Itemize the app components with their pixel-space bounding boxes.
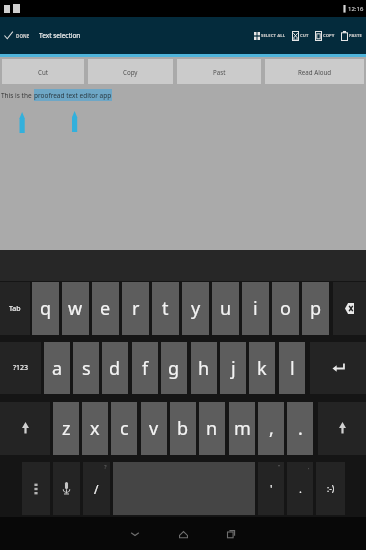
- button[interactable]: j: [220, 342, 246, 394]
- button[interactable]: Hide keyboard: [122, 521, 148, 547]
- button[interactable]: settings: [22, 462, 50, 515]
- staticText: o: [280, 296, 291, 321]
- button[interactable]: h: [191, 342, 217, 394]
- staticText: f: [142, 356, 149, 381]
- staticText: proofread text editor app: [34, 91, 112, 100]
- staticText: Cut: [38, 68, 48, 76]
- button[interactable]: Tab: [0, 282, 30, 335]
- staticText: p: [310, 296, 322, 321]
- button[interactable]: Copy: [88, 59, 173, 84]
- staticText: ,: [269, 416, 274, 441]
- staticText: k: [257, 356, 267, 381]
- button[interactable]: Read Aloud: [265, 59, 364, 84]
- button[interactable]: e: [92, 282, 119, 335]
- staticText: g: [168, 356, 180, 381]
- button[interactable]: k: [249, 342, 275, 394]
- staticText: SELECT ALL: [261, 33, 286, 39]
- button[interactable]: w: [62, 282, 89, 335]
- staticText: :-): [327, 483, 335, 494]
- button[interactable]: ?123: [0, 342, 41, 394]
- button[interactable]: d: [102, 342, 128, 394]
- staticText: 12:16: [348, 5, 364, 13]
- button[interactable]: enter: [310, 342, 366, 394]
- staticText: n: [206, 416, 218, 441]
- button[interactable]: SELECT ALL: [251, 24, 289, 48]
- button[interactable]: a: [44, 342, 70, 394]
- staticText: j: [231, 356, 236, 381]
- button[interactable]: COPY: [312, 23, 338, 49]
- button[interactable]: shift: [0, 402, 50, 455]
- staticText: c: [120, 416, 129, 441]
- button[interactable]: ,: [258, 402, 284, 455]
- button[interactable]: Recent apps: [218, 521, 244, 547]
- staticText: ?123: [13, 363, 29, 373]
- button[interactable]: backspace: [333, 282, 366, 335]
- button[interactable]: o: [272, 282, 299, 335]
- staticText: COPY: [323, 33, 335, 39]
- staticText: w: [68, 296, 83, 321]
- staticText: ,: [308, 463, 310, 471]
- staticText: .: [298, 416, 303, 441]
- button[interactable]: q: [32, 282, 59, 335]
- button[interactable]: p: [302, 282, 329, 335]
- button[interactable]: g: [161, 342, 187, 394]
- staticText: CUT: [300, 33, 309, 39]
- staticText: DONE: [16, 33, 30, 39]
- staticText: This is the: [1, 91, 34, 100]
- button[interactable]: x: [82, 402, 108, 455]
- button[interactable]: r: [122, 282, 149, 335]
- button[interactable]: Home: [170, 521, 196, 547]
- staticText: a: [52, 356, 63, 381]
- staticText: r: [132, 296, 140, 321]
- button[interactable]: Cut: [2, 59, 84, 84]
- staticText: q: [40, 296, 52, 321]
- staticText: Tab: [9, 304, 21, 314]
- button[interactable]: b: [170, 402, 196, 455]
- button[interactable]: :-): [316, 462, 345, 515]
- staticText: .: [299, 481, 302, 496]
- button[interactable]: y: [182, 282, 209, 335]
- button[interactable]: PASTE: [338, 23, 365, 49]
- staticText: ?: [104, 463, 107, 471]
- button[interactable]: .: [287, 402, 313, 455]
- staticText: e: [100, 296, 111, 321]
- staticText: v: [149, 416, 159, 441]
- button[interactable]: f: [132, 342, 158, 394]
- button[interactable]: m: [229, 402, 255, 455]
- staticText: m: [234, 416, 251, 441]
- staticText: /: [94, 481, 99, 497]
- staticText: Copy: [123, 68, 138, 76]
- staticText: Past: [213, 68, 226, 76]
- staticText: l: [290, 356, 295, 381]
- button[interactable]: t: [152, 282, 179, 335]
- button[interactable]: shift: [318, 402, 366, 455]
- button[interactable]: u: [212, 282, 239, 335]
- button[interactable]: DONE: [0, 23, 34, 48]
- staticText: i: [253, 296, 258, 321]
- staticText: d: [109, 356, 121, 381]
- staticText: x: [90, 416, 100, 441]
- button[interactable]: ": [258, 462, 284, 515]
- button[interactable]: v: [141, 402, 167, 455]
- staticText: y: [191, 296, 201, 321]
- staticText: s: [82, 356, 91, 381]
- button[interactable]: ,: [287, 462, 313, 515]
- staticText: Text selection: [39, 31, 81, 40]
- button[interactable]: z: [53, 402, 79, 455]
- button[interactable]: l: [279, 342, 305, 394]
- staticText: b: [177, 416, 189, 441]
- staticText: Read Aloud: [298, 68, 332, 76]
- button[interactable]: i: [242, 282, 269, 335]
- staticText: PASTE: [349, 33, 362, 39]
- button[interactable]: n: [199, 402, 225, 455]
- button[interactable]: Past: [177, 59, 261, 84]
- button[interactable]: mic: [53, 462, 80, 515]
- staticText: ': [270, 481, 273, 496]
- staticText: t: [162, 296, 169, 321]
- staticText: h: [198, 356, 210, 381]
- button[interactable]: ?: [83, 462, 110, 515]
- button[interactable]: c: [111, 402, 137, 455]
- button[interactable]: CUT: [289, 23, 312, 49]
- button[interactable]: s: [73, 342, 99, 394]
